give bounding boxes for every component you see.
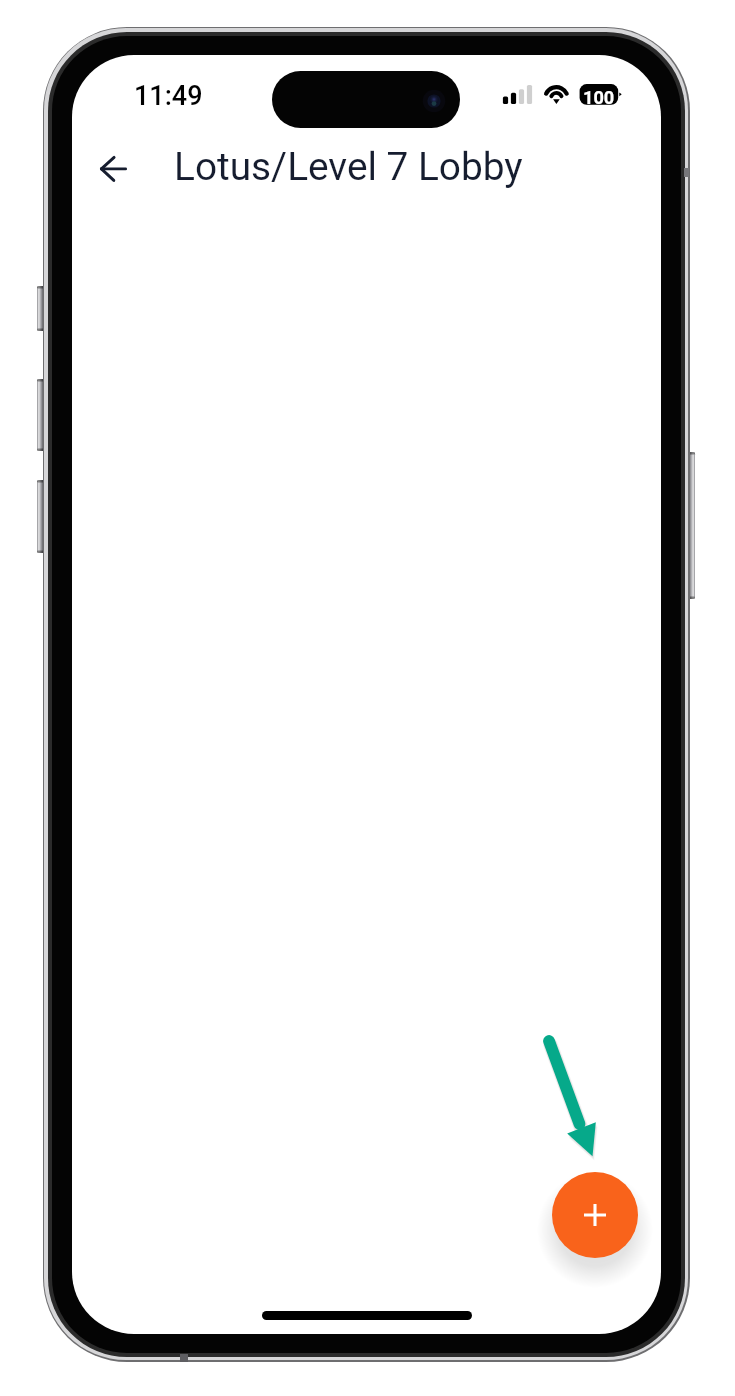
staticText: Lotus/Level 7 Lobby xyxy=(174,144,523,189)
staticText: 11:49 xyxy=(134,80,203,112)
staticText: 100 xyxy=(583,87,615,108)
button[interactable]: Back xyxy=(85,145,141,193)
button[interactable]: Add xyxy=(552,1172,638,1258)
